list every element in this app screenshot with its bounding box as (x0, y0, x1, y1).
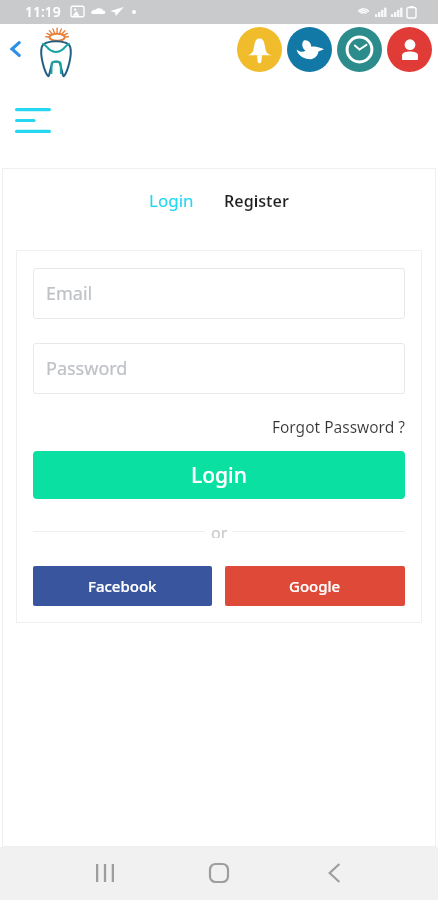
button[interactable]: Twitter (287, 27, 332, 72)
staticText: Password (46, 356, 128, 381)
staticText: 11:19 (25, 2, 61, 21)
button[interactable]: Google (225, 566, 405, 606)
button[interactable]: Facebook (33, 566, 212, 606)
button[interactable]: Menu (10, 100, 56, 140)
button[interactable]: History (337, 27, 382, 72)
button[interactable]: Login (33, 451, 405, 499)
button[interactable]: Forgot Password ? (33, 416, 405, 437)
button[interactable]: Back (3, 36, 29, 62)
button[interactable]: Login (141, 185, 202, 216)
staticText: Login (191, 461, 247, 490)
button[interactable]: Email (33, 268, 405, 319)
staticText: Facebook (88, 576, 157, 596)
staticText: Register (224, 190, 289, 212)
staticText: or (211, 522, 228, 538)
button[interactable]: Register (216, 186, 297, 216)
staticText: Google (289, 576, 341, 596)
staticText: Login (149, 189, 194, 212)
button[interactable]: Home (193, 847, 245, 899)
button[interactable]: Profile (387, 27, 432, 72)
staticText: Email (46, 281, 93, 306)
button[interactable]: Password (33, 343, 405, 394)
button[interactable]: Notifications (237, 27, 282, 72)
button[interactable]: Back (308, 847, 360, 899)
button[interactable]: Recent apps (79, 847, 131, 899)
